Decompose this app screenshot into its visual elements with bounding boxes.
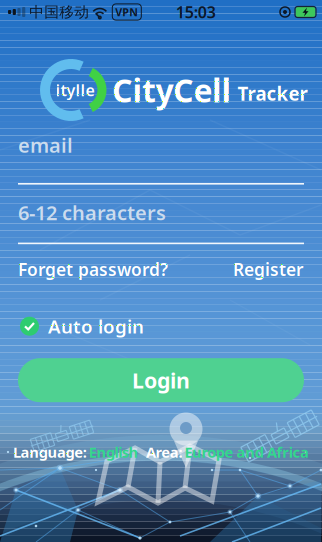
staticText: itylle: [55, 79, 94, 101]
staticText: Tracker: [237, 81, 307, 106]
staticText: Auto login: [48, 314, 144, 339]
button[interactable]: Register: [233, 258, 304, 281]
button[interactable]: Auto login: [20, 314, 144, 339]
staticText: VPN: [115, 5, 138, 19]
staticText: 6-12 characters: [18, 199, 166, 226]
staticText: Login: [132, 366, 190, 394]
staticText: CityCell: [112, 69, 231, 111]
staticText: English: [89, 442, 138, 462]
staticText: email: [18, 132, 73, 158]
staticText: Area:: [146, 442, 182, 462]
button[interactable]: Language:: [13, 442, 138, 462]
button[interactable]: password, 6-12 characters: [18, 203, 304, 223]
staticText: Forget password?: [18, 258, 168, 281]
button[interactable]: Area:: [146, 442, 309, 462]
staticText: Language:: [13, 442, 87, 462]
button[interactable]: email: [18, 135, 304, 155]
staticText: Register: [233, 258, 304, 281]
button[interactable]: Forget password?: [18, 258, 168, 281]
staticText: 中国移动: [29, 3, 89, 21]
staticText: Europe and Africa: [184, 442, 309, 462]
button[interactable]: Login: [18, 358, 304, 402]
staticText: 15:03: [176, 1, 216, 23]
